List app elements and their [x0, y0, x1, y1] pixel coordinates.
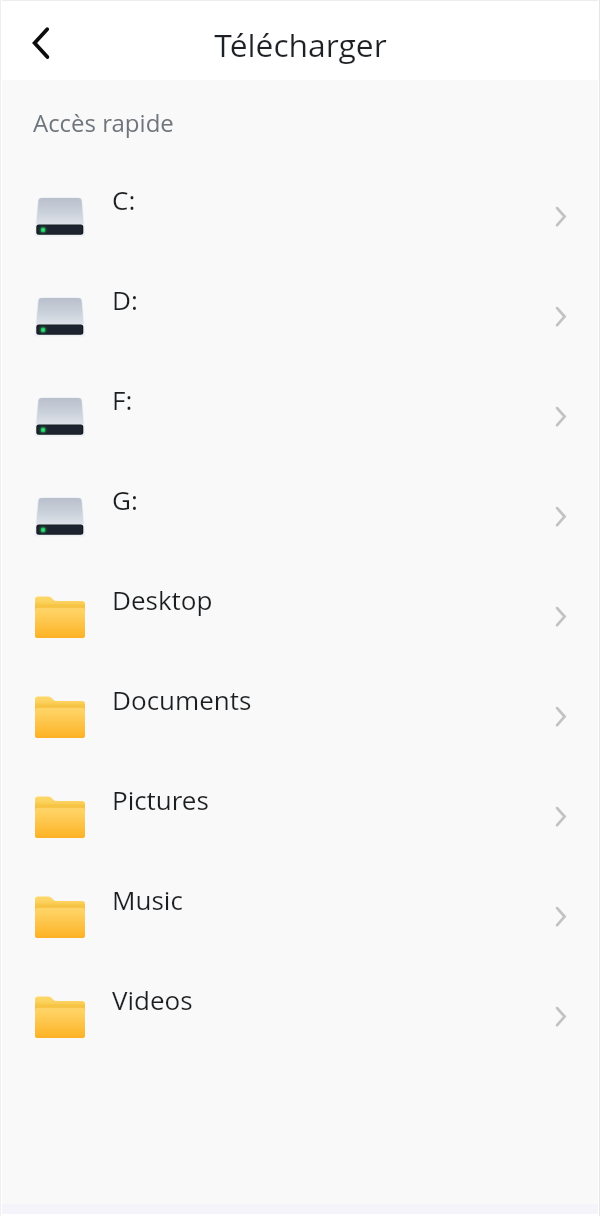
button[interactable]: C:: [0, 167, 600, 267]
button[interactable]: Documents: [0, 667, 600, 767]
staticText: Documents: [112, 682, 252, 717]
button[interactable]: G:: [0, 467, 600, 567]
button[interactable]: D:: [0, 267, 600, 367]
button[interactable]: Pictures: [0, 767, 600, 867]
staticText: F:: [112, 382, 133, 417]
staticText: C:: [112, 182, 136, 217]
staticText: Accès rapide: [33, 106, 174, 139]
staticText: Pictures: [112, 782, 209, 817]
button[interactable]: Desktop: [0, 567, 600, 667]
button[interactable]: Videos: [0, 967, 600, 1067]
staticText: D:: [112, 282, 138, 317]
button[interactable]: F:: [0, 367, 600, 467]
staticText: Music: [112, 882, 183, 917]
staticText: Videos: [112, 982, 193, 1017]
button[interactable]: Back: [17, 19, 64, 61]
button[interactable]: Music: [0, 867, 600, 967]
staticText: G:: [112, 482, 138, 517]
staticText: Télécharger: [214, 23, 387, 66]
staticText: Desktop: [112, 582, 213, 617]
